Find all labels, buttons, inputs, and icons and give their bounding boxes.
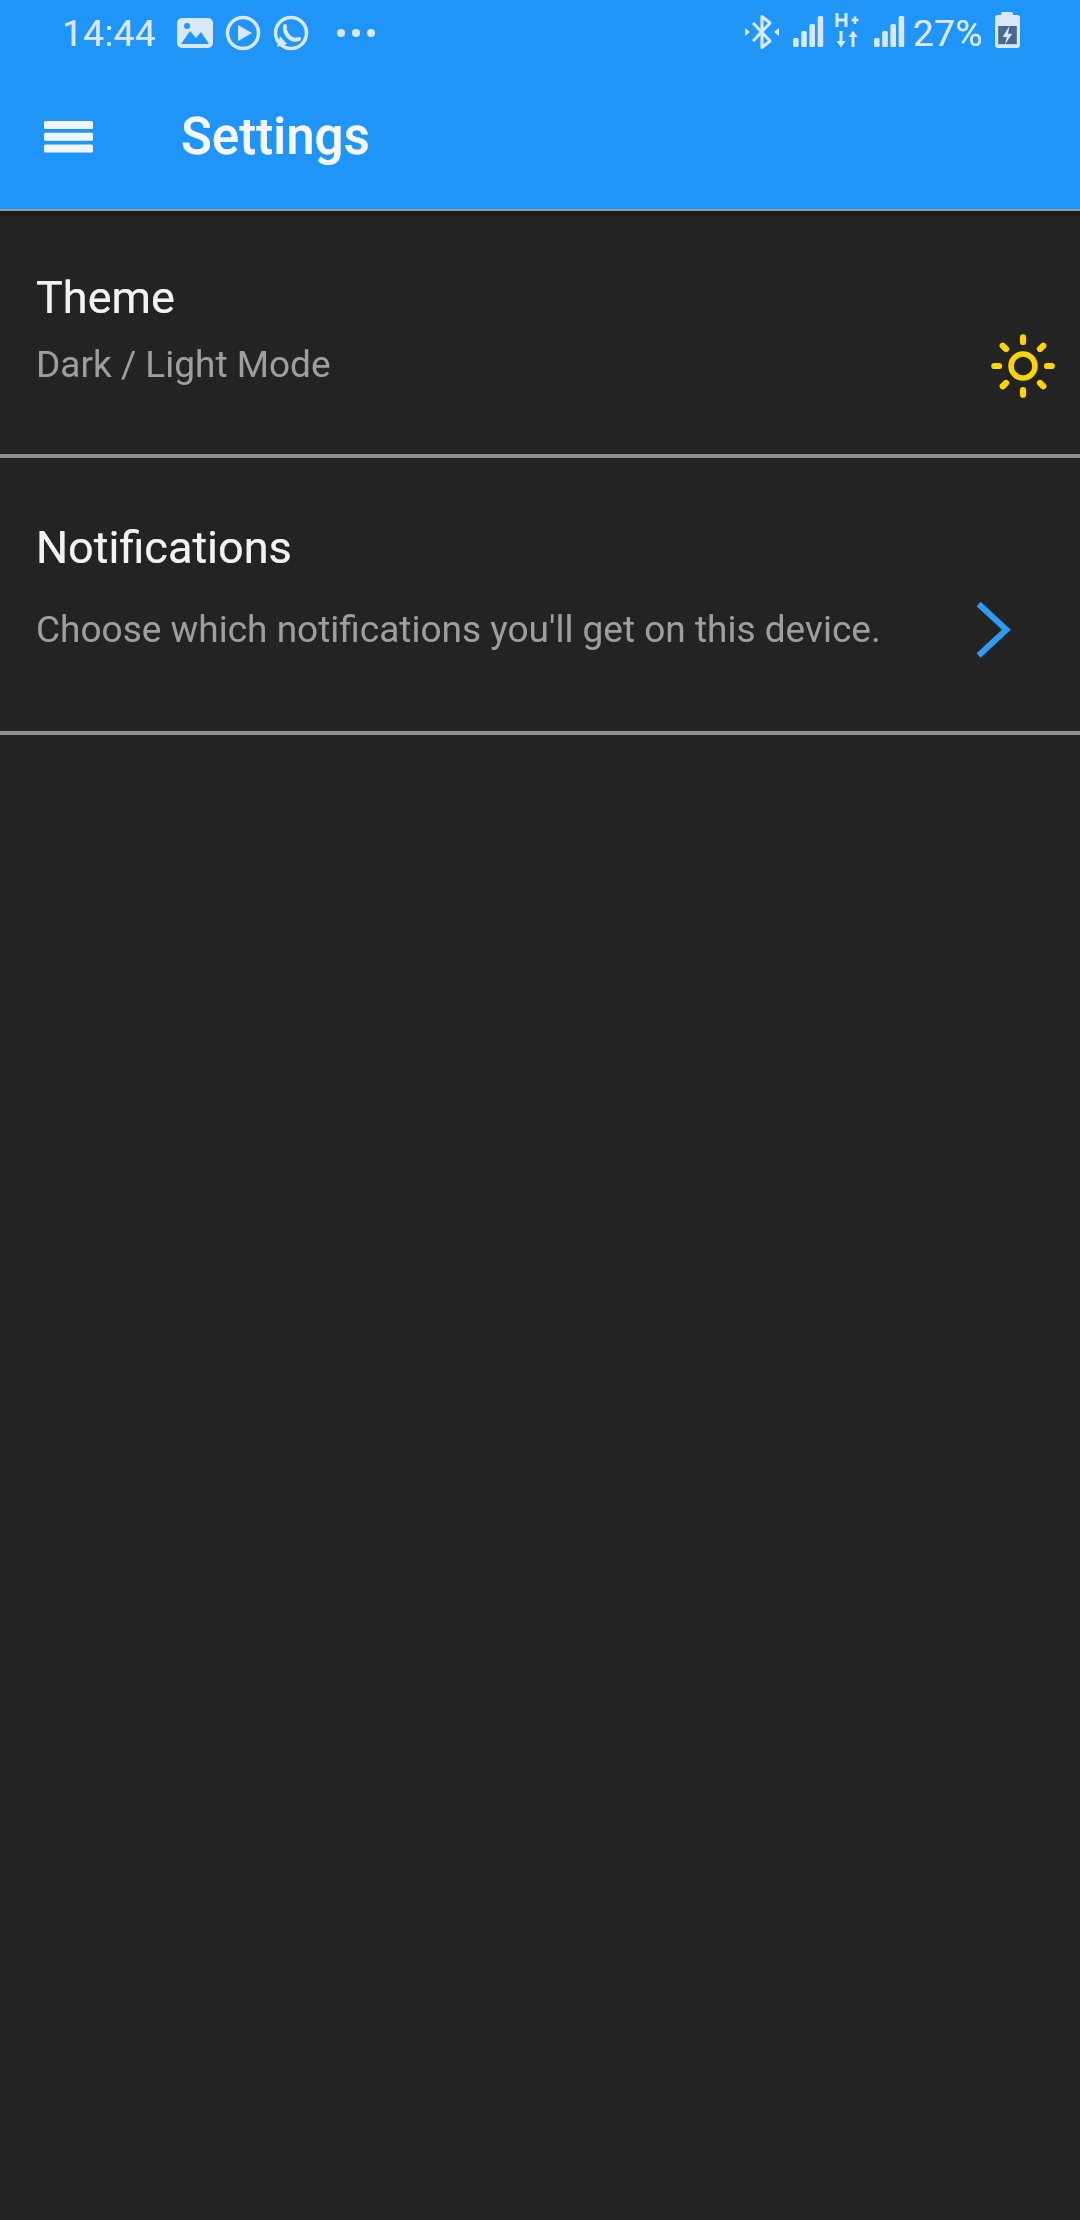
staticText: 27% <box>913 12 983 55</box>
staticText: Theme <box>36 271 175 324</box>
staticText: Choose which notifications you'll get on… <box>36 608 881 651</box>
button[interactable]: Notifications <box>0 457 1080 731</box>
staticText: Settings <box>181 107 370 167</box>
staticText: Dark / Light Mode <box>36 343 331 386</box>
button[interactable] <box>32 101 106 173</box>
staticText: Notifications <box>36 521 292 574</box>
staticText: 14:44 <box>62 12 157 55</box>
button[interactable]: Theme <box>0 210 1080 454</box>
